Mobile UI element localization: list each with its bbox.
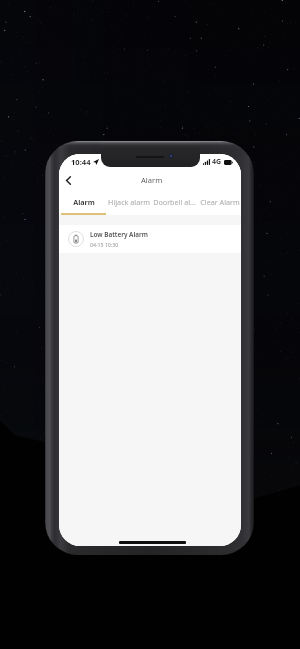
button[interactable]: Back xyxy=(59,169,78,191)
staticText: 04-15 10:30 xyxy=(90,241,119,248)
button[interactable]: Low Battery Alarm xyxy=(59,225,241,253)
staticText: 10:44 xyxy=(71,157,91,167)
staticText: 4G xyxy=(212,157,222,167)
button[interactable]: Alarm xyxy=(61,193,106,215)
staticText: Doorbell al... xyxy=(153,197,196,207)
staticText: Hijack alarm xyxy=(108,197,150,207)
staticText: Clear Alarm xyxy=(200,197,240,207)
button[interactable]: Clear Alarm xyxy=(197,193,241,215)
button[interactable]: Hijack alarm xyxy=(106,193,151,215)
staticText: Alarm xyxy=(73,197,95,207)
button[interactable]: Doorbell al... xyxy=(151,193,197,215)
staticText: Low Battery Alarm xyxy=(90,230,148,239)
staticText: Alarm xyxy=(141,175,163,185)
